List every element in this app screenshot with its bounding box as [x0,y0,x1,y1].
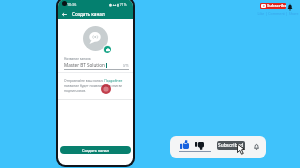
staticText: ● ▴▴ ▮ 71% [109,2,127,7]
staticText: 0/75 [123,64,129,68]
button[interactable]: Dislike [193,139,206,152]
staticText: Like | Comment | Share [257,11,299,16]
button[interactable]: Like [178,138,191,151]
button[interactable]: Back [60,10,68,18]
button[interactable]: Add channel photo [103,45,111,53]
staticText: Отправляйте ваш канал. Подробнее названи… [64,78,123,93]
staticText: 10:36 [67,2,77,7]
staticText: Subscribe [267,3,286,9]
staticText: Создать канал [72,11,105,17]
staticText: Subscribed [218,142,244,149]
staticText: Название канала [64,57,91,61]
button[interactable]: Notification bell [250,140,262,152]
button[interactable]: Создать канал [60,146,131,154]
staticText: Master BT Solution [64,62,105,68]
button[interactable]: Subscribe [260,3,286,9]
staticText: Создать канал [82,148,109,153]
button[interactable]: Notifications [286,2,294,11]
button[interactable]: Subscribed [217,141,245,150]
